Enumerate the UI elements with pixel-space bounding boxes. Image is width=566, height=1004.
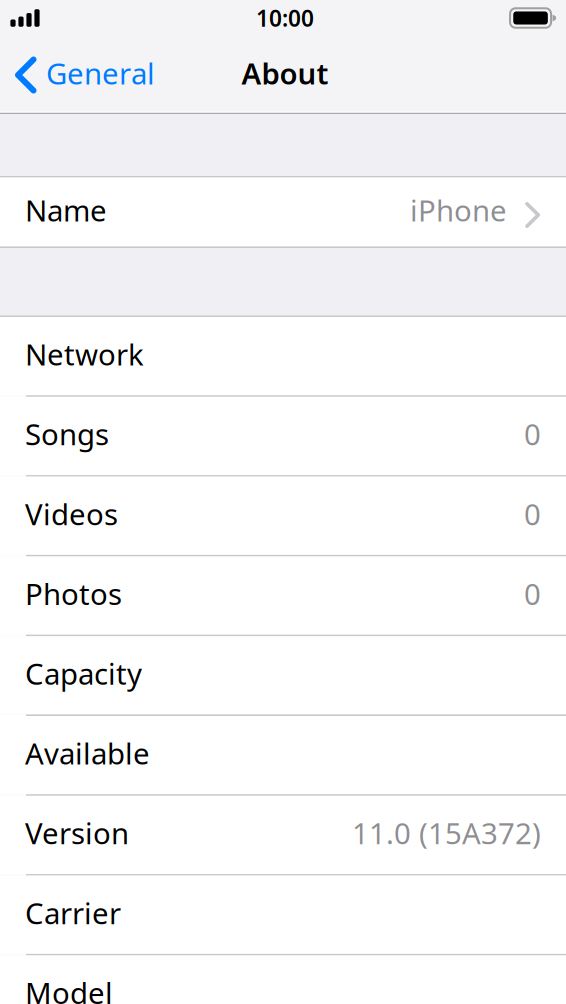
staticText: iPhone bbox=[410, 190, 507, 229]
staticText: About bbox=[241, 53, 328, 92]
button[interactable]: Available bbox=[0, 716, 566, 794]
staticText: Available bbox=[25, 734, 150, 773]
staticText: Network bbox=[25, 335, 144, 374]
button[interactable]: Carrier bbox=[0, 876, 566, 954]
button[interactable]: Version bbox=[0, 796, 566, 874]
staticText: Version bbox=[25, 813, 129, 852]
staticText: Songs bbox=[25, 414, 109, 453]
staticText: 10:00 bbox=[256, 3, 314, 33]
button[interactable]: Name bbox=[0, 177, 566, 246]
staticText: Capacity bbox=[25, 654, 142, 693]
button[interactable]: Videos bbox=[0, 477, 566, 555]
staticText: 11.0 (15A372) bbox=[352, 813, 541, 852]
staticText: General bbox=[46, 53, 155, 92]
staticText: Videos bbox=[25, 494, 118, 533]
button[interactable]: Network bbox=[0, 317, 566, 395]
staticText: Carrier bbox=[25, 893, 121, 932]
staticText: Model bbox=[25, 973, 113, 1004]
staticText: 0 bbox=[524, 574, 541, 613]
button[interactable]: Model bbox=[0, 955, 566, 1004]
button[interactable]: Photos bbox=[0, 556, 566, 635]
staticText: 0 bbox=[524, 414, 541, 453]
button[interactable]: Capacity bbox=[0, 636, 566, 714]
button[interactable]: Songs bbox=[0, 397, 566, 475]
staticText: 0 bbox=[524, 494, 541, 533]
staticText: Photos bbox=[25, 574, 122, 613]
button[interactable]: General bbox=[0, 45, 165, 105]
staticText: Name bbox=[25, 190, 107, 229]
navigationBar: About bbox=[0, 45, 566, 105]
